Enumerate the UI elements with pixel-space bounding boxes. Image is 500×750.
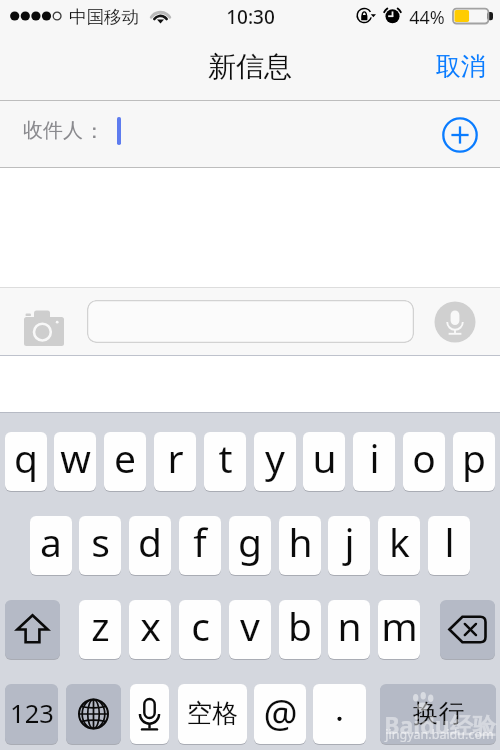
staticText: s	[91, 516, 110, 568]
button[interactable]: f	[179, 516, 221, 575]
button[interactable]: q	[5, 432, 47, 491]
staticText: ：	[84, 118, 105, 144]
button[interactable]: Add contact	[440, 115, 480, 155]
staticText: g	[238, 516, 262, 568]
staticText: a	[40, 516, 62, 568]
staticText: 新信息	[208, 49, 292, 84]
button[interactable]: h	[279, 516, 321, 575]
staticText: @	[263, 686, 298, 738]
button[interactable]: Backspace	[440, 600, 495, 659]
button[interactable]: j	[328, 516, 370, 575]
staticText: 10:30	[226, 4, 275, 30]
button[interactable]: 换行	[380, 684, 496, 744]
staticText: 44%	[409, 5, 445, 30]
staticText: r	[167, 432, 184, 484]
button[interactable]: k	[378, 516, 420, 575]
button[interactable]: Shift	[5, 600, 60, 659]
button[interactable]: @	[254, 684, 306, 744]
staticText: jingyan.baidu.com	[385, 726, 494, 743]
staticText: 收件人	[23, 118, 83, 143]
button[interactable]: 取消	[422, 44, 500, 92]
button[interactable]: p	[453, 432, 495, 491]
button[interactable]: l	[428, 516, 470, 575]
staticText: j	[344, 516, 355, 568]
button[interactable]: g	[229, 516, 271, 575]
staticText: t	[218, 432, 233, 484]
button[interactable]: d	[129, 516, 171, 575]
staticText: x	[140, 600, 161, 652]
button[interactable]: 空格	[178, 684, 247, 744]
button[interactable]: Switch keyboard language	[66, 684, 121, 744]
button[interactable]: y	[254, 432, 296, 491]
staticText: o	[412, 432, 436, 484]
staticText: 中国移动	[69, 6, 139, 28]
staticText: 空格	[187, 697, 238, 729]
button[interactable]: e	[104, 432, 146, 491]
button[interactable]: v	[229, 600, 271, 659]
staticText: e	[114, 432, 136, 484]
staticText: u	[312, 432, 337, 484]
button[interactable]: s	[79, 516, 121, 575]
staticText: f	[193, 516, 207, 568]
button[interactable]: z	[79, 600, 121, 659]
staticText: z	[91, 600, 110, 652]
staticText: 换行	[413, 697, 464, 729]
staticText: b	[288, 600, 312, 652]
staticText: v	[240, 600, 260, 652]
button[interactable]: b	[279, 600, 321, 659]
button[interactable]: Dictation	[130, 684, 169, 744]
staticText: p	[462, 432, 486, 484]
button[interactable]: Camera	[19, 298, 67, 346]
staticText: i	[369, 432, 380, 484]
staticText: 123	[10, 696, 54, 731]
staticText: n	[337, 600, 362, 652]
button[interactable]: r	[154, 432, 196, 491]
button[interactable]: n	[328, 600, 370, 659]
staticText: y	[265, 432, 285, 484]
button[interactable]: i	[353, 432, 395, 491]
button[interactable]: 123	[5, 684, 58, 744]
button[interactable]: o	[403, 432, 445, 491]
button[interactable]: m	[378, 600, 420, 659]
staticText: d	[138, 516, 162, 568]
button[interactable]: t	[204, 432, 246, 491]
button[interactable]: c	[179, 600, 221, 659]
staticText: m	[381, 600, 418, 652]
staticText: 取消	[436, 51, 486, 82]
button[interactable]	[87, 300, 414, 343]
button[interactable]: w	[54, 432, 96, 491]
staticText: c	[191, 600, 210, 652]
button[interactable]: x	[129, 600, 171, 659]
staticText: l	[444, 516, 455, 568]
staticText: q	[14, 432, 38, 484]
button[interactable]: u	[303, 432, 345, 491]
button[interactable]: Period	[313, 684, 366, 744]
staticText: Baidu经验	[384, 709, 496, 740]
staticText: w	[60, 432, 91, 484]
staticText: k	[389, 516, 410, 568]
staticText: h	[288, 516, 313, 568]
button[interactable]: a	[30, 516, 72, 575]
button[interactable]: Voice message	[433, 300, 477, 344]
